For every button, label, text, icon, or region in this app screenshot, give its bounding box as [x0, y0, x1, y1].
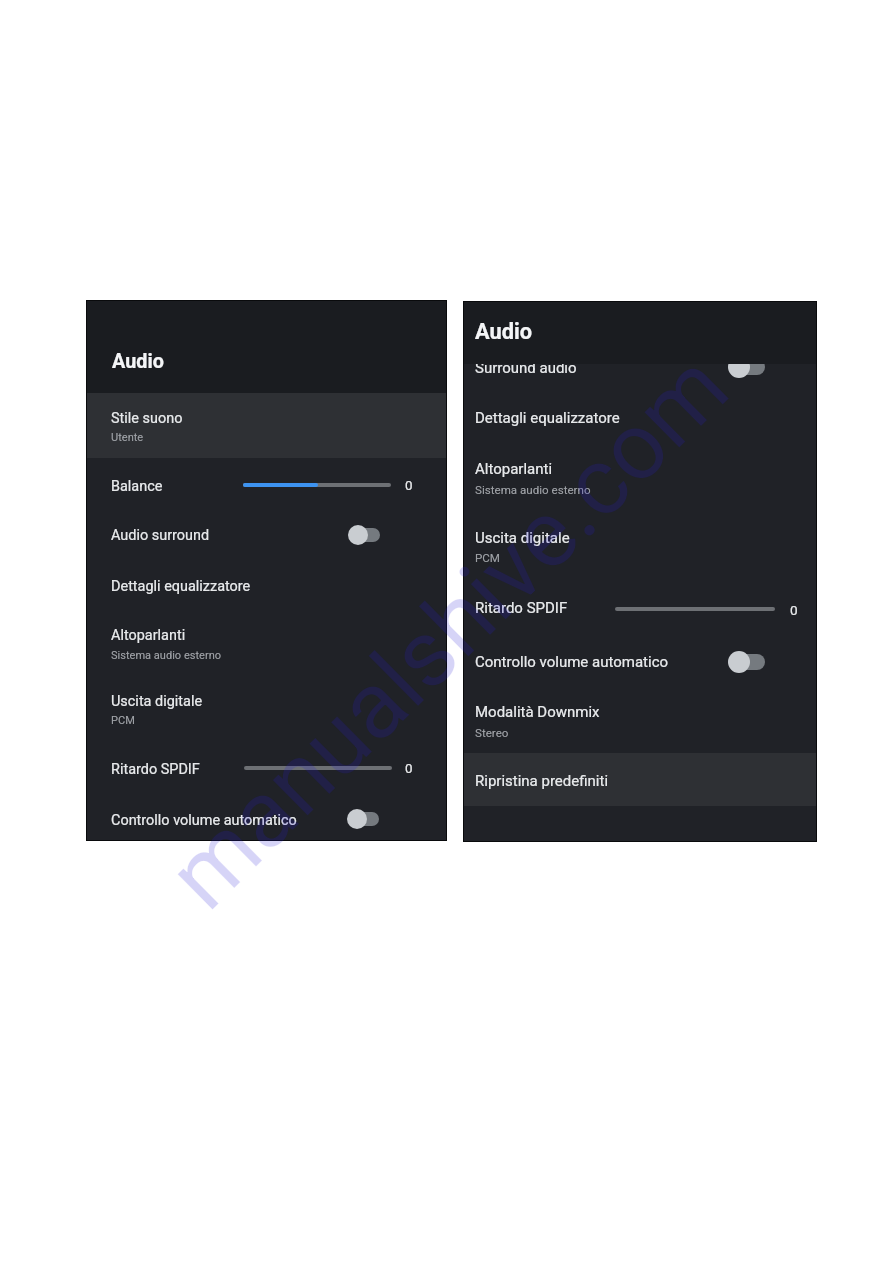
button[interactable]: Ritardo SPDIF — [87, 741, 446, 792]
staticText: Surround audio — [475, 359, 577, 377]
button[interactable]: Toggle switch, off — [337, 801, 389, 837]
staticText: Stereo — [475, 726, 509, 740]
staticText: Altoparlanti — [111, 627, 186, 644]
staticText: Modalità Downmix — [475, 703, 600, 721]
button[interactable]: Balance — [87, 458, 446, 508]
button[interactable]: Slider — [615, 599, 775, 619]
button[interactable]: Audio surround — [87, 508, 446, 558]
button[interactable]: Controllo volume automatico — [464, 642, 816, 693]
staticText: Ritardo SPDIF — [111, 761, 200, 778]
staticText: Altoparlanti — [475, 460, 553, 478]
staticText: 0 — [405, 761, 413, 777]
button[interactable]: Controllo volume automatico — [87, 792, 446, 841]
staticText: Audio — [475, 319, 533, 345]
button[interactable]: Slider — [243, 475, 391, 495]
staticText: Audio — [112, 350, 164, 373]
button[interactable]: Toggle switch, off — [338, 517, 390, 553]
button[interactable]: Slider — [244, 758, 392, 778]
staticText: Ripristina predefiniti — [475, 772, 609, 790]
button[interactable]: Altoparlanti — [87, 608, 446, 674]
button[interactable]: Stile suono — [87, 393, 446, 458]
staticText: Dettagli equalizzatore — [111, 578, 251, 595]
staticText: Audio surround — [111, 527, 210, 544]
button[interactable]: Surround audio — [464, 348, 816, 399]
button[interactable]: Uscita digitale — [87, 674, 446, 741]
staticText: 0 — [790, 602, 798, 618]
staticText: Uscita digitale — [475, 529, 570, 547]
button[interactable]: Uscita digitale — [464, 519, 816, 589]
staticText: Controllo volume automatico — [111, 812, 297, 829]
button[interactable]: Toggle switch, off — [718, 643, 774, 681]
button[interactable]: Toggle switch, off — [718, 348, 774, 386]
staticText: Uscita digitale — [111, 693, 203, 710]
staticText: Controllo volume automatico — [475, 653, 669, 671]
staticText: Stile suono — [111, 410, 183, 427]
button[interactable]: Dettagli equalizzatore — [87, 558, 446, 608]
button[interactable]: Modalità Downmix — [464, 693, 816, 753]
staticText: Balance — [111, 478, 163, 495]
staticText: Utente — [111, 431, 144, 444]
button[interactable]: Dettagli equalizzatore — [464, 399, 816, 450]
button[interactable]: Audio — [464, 302, 816, 364]
staticText: 0 — [405, 478, 413, 494]
staticText: Sistema audio esterno — [111, 649, 222, 662]
staticText: Ritardo SPDIF — [475, 599, 568, 617]
button[interactable]: Audio — [87, 301, 446, 393]
staticText: PCM — [111, 714, 135, 727]
staticText: PCM — [475, 551, 500, 565]
button[interactable]: Ritardo SPDIF — [464, 589, 816, 642]
button[interactable]: Ripristina predefiniti — [464, 753, 816, 806]
staticText: Dettagli equalizzatore — [475, 409, 620, 427]
button[interactable]: Altoparlanti — [464, 450, 816, 519]
staticText: Sistema audio esterno — [475, 483, 591, 497]
